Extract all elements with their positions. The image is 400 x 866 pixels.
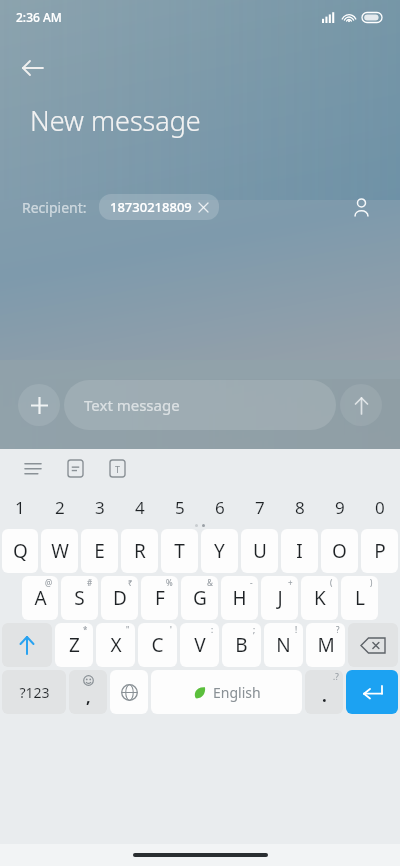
button[interactable]: W: [41, 529, 78, 573]
button[interactable]: ': [138, 623, 177, 667]
staticText: 2:36 AM: [16, 9, 62, 25]
staticText: 4: [135, 496, 145, 519]
button[interactable]: Menu: [18, 453, 48, 483]
button[interactable]: %: [141, 576, 178, 620]
button[interactable]: 0: [360, 486, 400, 529]
button[interactable]: Clipboard: [60, 453, 90, 483]
button[interactable]: Switch language: [110, 670, 148, 714]
other: Enter: [362, 685, 382, 699]
staticText: New message: [30, 102, 201, 139]
button[interactable]: !: [264, 623, 303, 667]
button[interactable]: *: [55, 623, 93, 667]
staticText: 3: [95, 496, 105, 519]
staticText: Text message: [84, 395, 180, 415]
button[interactable]: Enter: [346, 670, 398, 714]
button[interactable]: ): [341, 576, 378, 620]
button[interactable]: 8: [280, 486, 320, 529]
staticText: +: [288, 577, 293, 588]
button[interactable]: Q: [2, 529, 38, 573]
staticText: R: [134, 538, 146, 564]
button[interactable]: Text style: [102, 453, 132, 483]
button[interactable]: R: [121, 529, 158, 573]
button[interactable]: 3: [80, 486, 120, 529]
staticText: X: [110, 632, 122, 658]
other: Backspace: [361, 638, 385, 653]
staticText: ,: [86, 686, 91, 708]
button[interactable]: U: [241, 529, 278, 573]
staticText: English: [213, 683, 261, 702]
staticText: H: [232, 585, 247, 611]
staticText: ": [126, 624, 130, 635]
button[interactable]: ?: [306, 623, 345, 667]
button[interactable]: 9: [320, 486, 360, 529]
button[interactable]: ": [96, 623, 135, 667]
button[interactable]: T: [161, 529, 198, 573]
staticText: E: [94, 538, 105, 564]
staticText: ₹: [128, 577, 133, 588]
button[interactable]: -: [221, 576, 258, 620]
button[interactable]: @: [22, 576, 58, 620]
staticText: M: [317, 632, 335, 658]
other: Switch language: [121, 684, 138, 701]
staticText: 9: [335, 496, 345, 519]
button[interactable]: Backspace: [348, 623, 398, 667]
button[interactable]: 2: [40, 486, 80, 529]
staticText: S: [74, 585, 85, 611]
button[interactable]: ?123: [2, 670, 66, 714]
button[interactable]: English: [151, 670, 302, 714]
staticText: ;: [253, 624, 256, 635]
button[interactable]: 6: [200, 486, 240, 529]
button[interactable]: P: [361, 529, 398, 573]
staticText: Recipient:: [22, 198, 87, 217]
button[interactable]: Emoji and comma: [69, 670, 107, 714]
staticText: !: [295, 624, 298, 635]
other: Shift: [18, 636, 36, 654]
button[interactable]: #: [61, 576, 98, 620]
button[interactable]: Pick contact: [344, 190, 378, 224]
button[interactable]: I: [281, 529, 318, 573]
button[interactable]: O: [321, 529, 358, 573]
staticText: %: [166, 577, 173, 588]
button[interactable]: ₹: [101, 576, 138, 620]
staticText: D: [113, 585, 127, 611]
button[interactable]: (: [301, 576, 338, 620]
staticText: #: [87, 577, 93, 588]
button[interactable]: Text message: [64, 380, 336, 430]
button[interactable]: 4: [120, 486, 160, 529]
button[interactable]: Y: [201, 529, 238, 573]
staticText: P: [374, 538, 386, 564]
button[interactable]: 5: [160, 486, 200, 529]
button[interactable]: &: [181, 576, 218, 620]
button[interactable]: 7: [240, 486, 280, 529]
staticText: ?123: [19, 683, 50, 702]
staticText: 8: [295, 496, 305, 519]
button[interactable]: Send: [340, 384, 382, 426]
staticText: F: [155, 585, 165, 611]
button[interactable]: Shift: [2, 623, 52, 667]
button[interactable]: 1: [0, 486, 40, 529]
button[interactable]: +: [261, 576, 298, 620]
staticText: (: [330, 577, 333, 588]
staticText: I: [296, 538, 303, 564]
staticText: :: [211, 624, 214, 635]
staticText: ): [370, 577, 373, 588]
staticText: @: [45, 577, 53, 588]
staticText: L: [355, 585, 365, 611]
button[interactable]: Period: [305, 670, 343, 714]
staticText: &: [207, 577, 213, 588]
button[interactable]: ;: [222, 623, 261, 667]
staticText: W: [51, 538, 69, 564]
staticText: ?: [336, 624, 340, 635]
button[interactable]: Add attachment: [18, 384, 60, 426]
button[interactable]: :: [180, 623, 219, 667]
staticText: T: [115, 463, 121, 475]
staticText: 5: [175, 496, 185, 519]
button[interactable]: E: [81, 529, 118, 573]
staticText: B: [235, 632, 248, 658]
button[interactable]: 18730218809: [99, 194, 219, 220]
staticText: U: [253, 538, 267, 564]
staticText: N: [276, 632, 291, 658]
staticText: O: [332, 538, 347, 564]
staticText: Z: [69, 632, 80, 658]
button[interactable]: Back: [22, 48, 62, 88]
